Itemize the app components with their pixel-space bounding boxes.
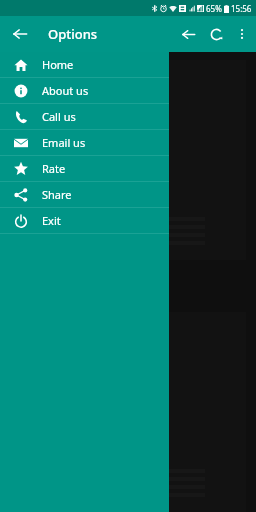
button[interactable]: Refresh xyxy=(202,20,230,48)
button[interactable]: Home xyxy=(0,52,169,78)
staticText: 65% xyxy=(206,3,222,14)
button[interactable]: Rate xyxy=(0,156,169,182)
button[interactable]: More options xyxy=(230,22,254,46)
button[interactable]: Call us xyxy=(0,104,169,130)
button[interactable]: Back xyxy=(174,20,202,48)
button[interactable] xyxy=(102,100,152,115)
button[interactable]: Share xyxy=(0,182,169,208)
staticText: 15:56 xyxy=(231,3,252,14)
staticText: Call us xyxy=(42,109,76,124)
staticText: Rate xyxy=(42,161,66,176)
staticText: Options xyxy=(48,25,98,43)
button[interactable]: Back xyxy=(6,20,34,48)
button[interactable]: Email us xyxy=(0,130,169,156)
staticText: Share xyxy=(42,187,72,202)
staticText: Exit xyxy=(42,213,61,228)
staticText: Email us xyxy=(42,135,86,150)
staticText: About us xyxy=(42,83,89,98)
button[interactable]: Exit xyxy=(0,208,169,234)
button[interactable]: About us xyxy=(0,78,169,104)
staticText: Home xyxy=(42,57,74,72)
